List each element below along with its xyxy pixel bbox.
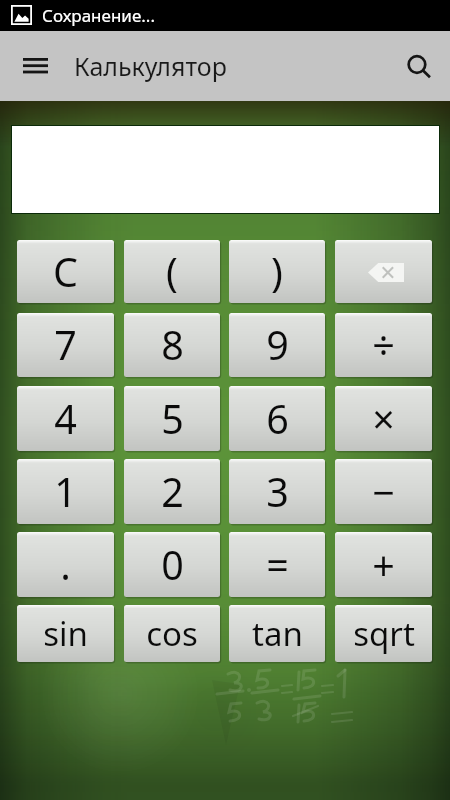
button[interactable]: 3 [229,459,325,524]
staticText: 5 [161,392,184,446]
staticText: 3 [266,465,289,519]
staticText: C [53,245,78,299]
staticText: 6 [266,392,289,446]
button[interactable]: 9 [229,313,325,377]
button[interactable]: × [335,386,432,451]
button[interactable]: 7 [17,313,114,377]
button[interactable]: sin [17,605,114,662]
button[interactable]: 5 [124,386,220,451]
button[interactable]: 0 [124,532,220,597]
staticText: . [60,538,71,592]
button[interactable]: 4 [17,386,114,451]
button[interactable]: cos [124,605,220,662]
staticText: 4 [54,392,77,446]
button[interactable]: 8 [124,313,220,377]
button[interactable]: . [17,532,114,597]
button[interactable]: tan [229,605,325,662]
staticText: ÷ [372,318,395,372]
staticText: 2 [161,465,184,519]
staticText: tan [252,611,303,656]
button[interactable]: + [335,532,432,597]
staticText: 8 [161,318,184,372]
staticText: 9 [266,318,289,372]
staticText: − [372,465,395,519]
button[interactable]: 6 [229,386,325,451]
button[interactable]: 1 [17,459,114,524]
button[interactable]: Search [396,46,440,90]
staticText: 0 [161,538,184,592]
button[interactable]: 2 [124,459,220,524]
button[interactable]: C [17,240,114,303]
staticText: 1 [54,465,77,519]
button[interactable]: Backspace [335,240,432,303]
staticText: + [372,538,395,592]
button[interactable]: ) [229,240,325,303]
staticText: Сохранение... [42,4,155,27]
staticText: sin [43,611,88,656]
button[interactable]: ÷ [335,313,432,377]
button[interactable]: − [335,459,432,524]
button[interactable]: ( [124,240,220,303]
staticText: cos [146,611,198,656]
button[interactable]: sqrt [335,605,432,662]
staticText: × [372,392,395,446]
staticText: ) [271,245,283,299]
staticText: Калькулятор [74,49,227,83]
staticText: = [266,538,289,592]
button[interactable]: Menu [11,41,59,91]
staticText: 7 [54,318,77,372]
staticText: sqrt [353,611,415,656]
staticText: ( [166,245,178,299]
button[interactable]: = [229,532,325,597]
